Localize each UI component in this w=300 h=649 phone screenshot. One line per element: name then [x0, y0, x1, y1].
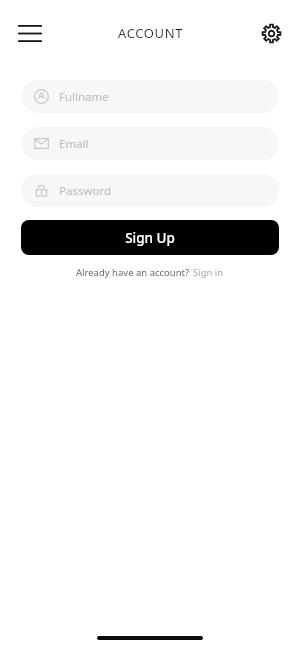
button[interactable]: Sign Up	[21, 220, 279, 255]
staticText: Fullname	[59, 89, 109, 105]
staticText: Sign in	[193, 266, 224, 279]
button[interactable]: Fullname	[21, 80, 279, 113]
button[interactable]: Sign in	[190, 266, 224, 279]
staticText: Email	[59, 136, 89, 152]
button[interactable]: Settings	[252, 14, 290, 52]
staticText: Already have an account?	[76, 266, 190, 279]
staticText: Sign Up	[125, 229, 175, 247]
staticText: Password	[59, 183, 112, 199]
button[interactable]: Email	[21, 127, 279, 160]
button[interactable]: Password	[21, 174, 279, 207]
button[interactable]: Menu	[10, 13, 50, 53]
staticText: ACCOUNT	[118, 24, 183, 42]
